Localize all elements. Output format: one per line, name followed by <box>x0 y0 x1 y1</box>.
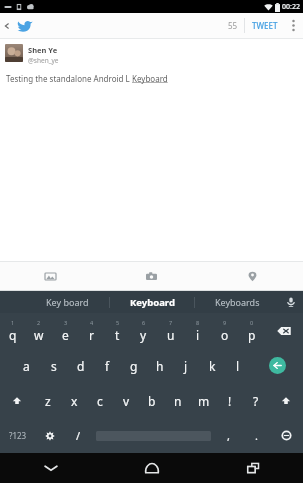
staticText: 00:22 <box>282 2 300 12</box>
button[interactable]: Enter <box>251 348 303 383</box>
button[interactable]: Keyboard <box>110 291 194 313</box>
staticText: 9 <box>223 319 227 326</box>
button[interactable]: Navigate up <box>0 13 14 38</box>
staticText: q <box>9 327 17 343</box>
staticText: Shen Ye <box>28 45 58 55</box>
staticText: u <box>167 327 175 343</box>
staticText: l <box>236 358 240 374</box>
button[interactable]: b <box>139 383 165 418</box>
button[interactable]: Space <box>92 418 214 453</box>
button[interactable]: 6 <box>130 313 157 348</box>
staticText: j <box>184 358 188 374</box>
button[interactable]: Add location <box>202 262 303 290</box>
button[interactable]: Keyboards <box>195 291 279 313</box>
button[interactable]: Hide keyboard <box>0 453 101 483</box>
button[interactable]: s <box>40 348 67 383</box>
button[interactable]: 0 <box>238 313 265 348</box>
staticText: z <box>45 393 51 409</box>
button[interactable]: ! <box>217 383 243 418</box>
button[interactable]: l <box>225 348 251 383</box>
button[interactable]: v <box>113 383 139 418</box>
staticText: ?123 <box>9 430 27 441</box>
staticText: . <box>255 428 258 443</box>
staticText: Keyboard <box>130 296 175 309</box>
button[interactable]: / <box>64 418 92 453</box>
staticText: , <box>227 428 230 443</box>
staticText: v <box>123 393 130 409</box>
staticText: 5 <box>116 319 120 326</box>
staticText: y <box>140 327 147 343</box>
staticText: 2 <box>37 319 41 326</box>
button[interactable]: Home <box>101 453 202 483</box>
staticText: Testing the standalone Android L <box>6 73 132 84</box>
button[interactable]: h <box>147 348 173 383</box>
button[interactable]: 7 <box>157 313 184 348</box>
button[interactable]: 3 <box>52 313 78 348</box>
button[interactable]: Shift <box>0 383 34 418</box>
button[interactable]: g <box>121 348 147 383</box>
staticText: o <box>221 327 229 343</box>
staticText: d <box>77 358 85 374</box>
button[interactable]: Voice input <box>279 291 303 313</box>
staticText: e <box>62 327 69 343</box>
button[interactable]: 4 <box>78 313 104 348</box>
button[interactable]: Emoji <box>270 418 303 453</box>
staticText: 0 <box>250 319 254 326</box>
staticText: s <box>51 358 57 374</box>
button[interactable]: Key board <box>26 291 109 313</box>
button[interactable]: c <box>87 383 113 418</box>
staticText: Keyboard <box>132 73 168 84</box>
staticText: f <box>105 358 110 374</box>
staticText: @shen_ye <box>28 56 59 65</box>
staticText: / <box>76 428 81 443</box>
button[interactable]: More options <box>285 13 301 38</box>
staticText: 4 <box>90 319 94 326</box>
button[interactable]: Profile photo <box>5 44 23 62</box>
staticText: Key board <box>46 296 89 308</box>
staticText: 3 <box>64 319 68 326</box>
button[interactable]: m <box>191 383 217 418</box>
button[interactable]: k <box>199 348 225 383</box>
button[interactable]: j <box>173 348 199 383</box>
staticText: TWEET <box>252 20 278 31</box>
button[interactable]: x <box>61 383 87 418</box>
button[interactable]: 5 <box>104 313 130 348</box>
staticText: 6 <box>142 319 146 326</box>
button[interactable]: . <box>242 418 270 453</box>
button[interactable]: z <box>34 383 61 418</box>
staticText: k <box>209 358 216 374</box>
button[interactable]: , <box>214 418 242 453</box>
button[interactable]: d <box>67 348 94 383</box>
button[interactable]: Add photo <box>0 262 101 290</box>
button[interactable]: Take photo <box>101 262 202 290</box>
staticText: 55 <box>228 20 238 31</box>
staticText: 8 <box>196 319 200 326</box>
staticText: h <box>156 358 164 374</box>
staticText: c <box>97 393 103 409</box>
button[interactable]: ? <box>243 383 269 418</box>
button[interactable]: n <box>165 383 191 418</box>
button[interactable]: ?123 <box>0 418 36 453</box>
staticText: b <box>148 393 156 409</box>
button[interactable]: Backspace <box>265 313 303 348</box>
button[interactable]: Recent apps <box>202 453 303 483</box>
staticText: Keyboards <box>215 296 260 308</box>
staticText: m <box>198 393 210 409</box>
staticText: ! <box>228 393 232 409</box>
button[interactable]: a <box>13 348 40 383</box>
staticText: p <box>248 327 256 343</box>
button[interactable]: 2 <box>26 313 52 348</box>
staticText: g <box>130 358 138 374</box>
staticText: 1 <box>11 319 15 326</box>
button[interactable]: 8 <box>184 313 211 348</box>
button[interactable]: 1 <box>0 313 26 348</box>
button[interactable]: f <box>94 348 121 383</box>
button[interactable]: Shift <box>269 383 303 418</box>
staticText: i <box>196 327 200 343</box>
staticText: r <box>89 327 94 343</box>
button[interactable]: 9 <box>211 313 238 348</box>
staticText: x <box>71 393 78 409</box>
button[interactable]: TWEET <box>245 13 285 38</box>
staticText: a <box>23 358 30 374</box>
button[interactable]: Keyboard settings <box>36 418 64 453</box>
